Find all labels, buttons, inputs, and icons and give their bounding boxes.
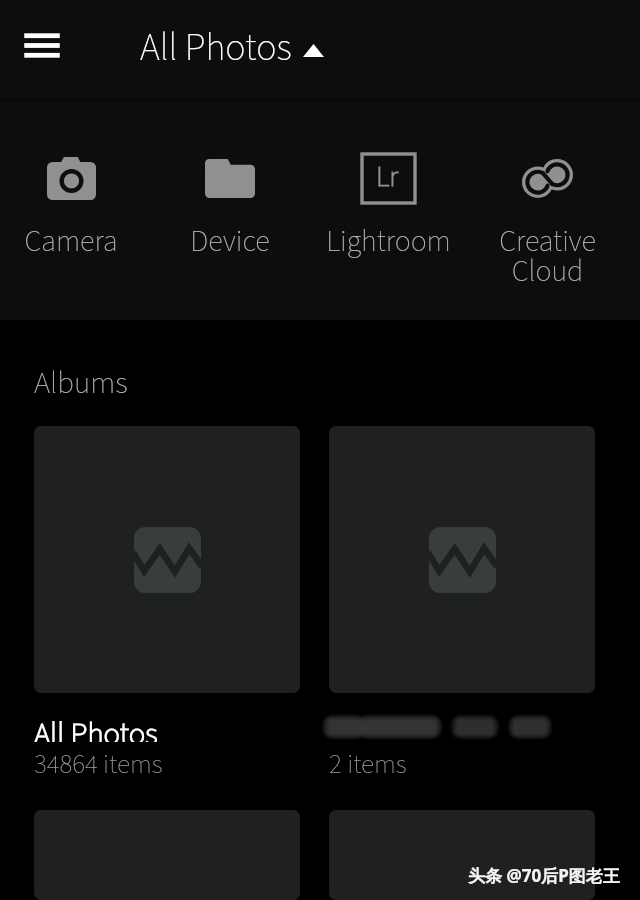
staticText: 34864 items <box>34 745 163 783</box>
button[interactable]: Creative Cloud <box>468 154 626 293</box>
staticText: Albums <box>34 361 128 405</box>
button[interactable] <box>329 810 595 900</box>
button[interactable]: All Photos <box>34 426 300 783</box>
staticText: 2 items <box>329 745 407 783</box>
staticText: Device <box>190 220 270 263</box>
staticText: Lr <box>376 156 399 197</box>
staticText: Lightroom <box>326 220 451 263</box>
button[interactable]: Lr <box>309 154 467 263</box>
staticText: Creative Cloud <box>499 220 596 293</box>
button[interactable]: Open navigation menu <box>14 22 70 78</box>
button[interactable]: Camera <box>0 154 150 263</box>
staticText: 头条 @70后P图老王 <box>468 864 620 887</box>
button[interactable]: 2 items <box>329 426 595 783</box>
staticText: All Photos <box>34 712 158 742</box>
button[interactable]: All Photos <box>140 21 324 75</box>
button[interactable]: Device <box>151 154 309 263</box>
staticText: All Photos <box>140 21 292 75</box>
staticText: Camera <box>24 220 118 263</box>
